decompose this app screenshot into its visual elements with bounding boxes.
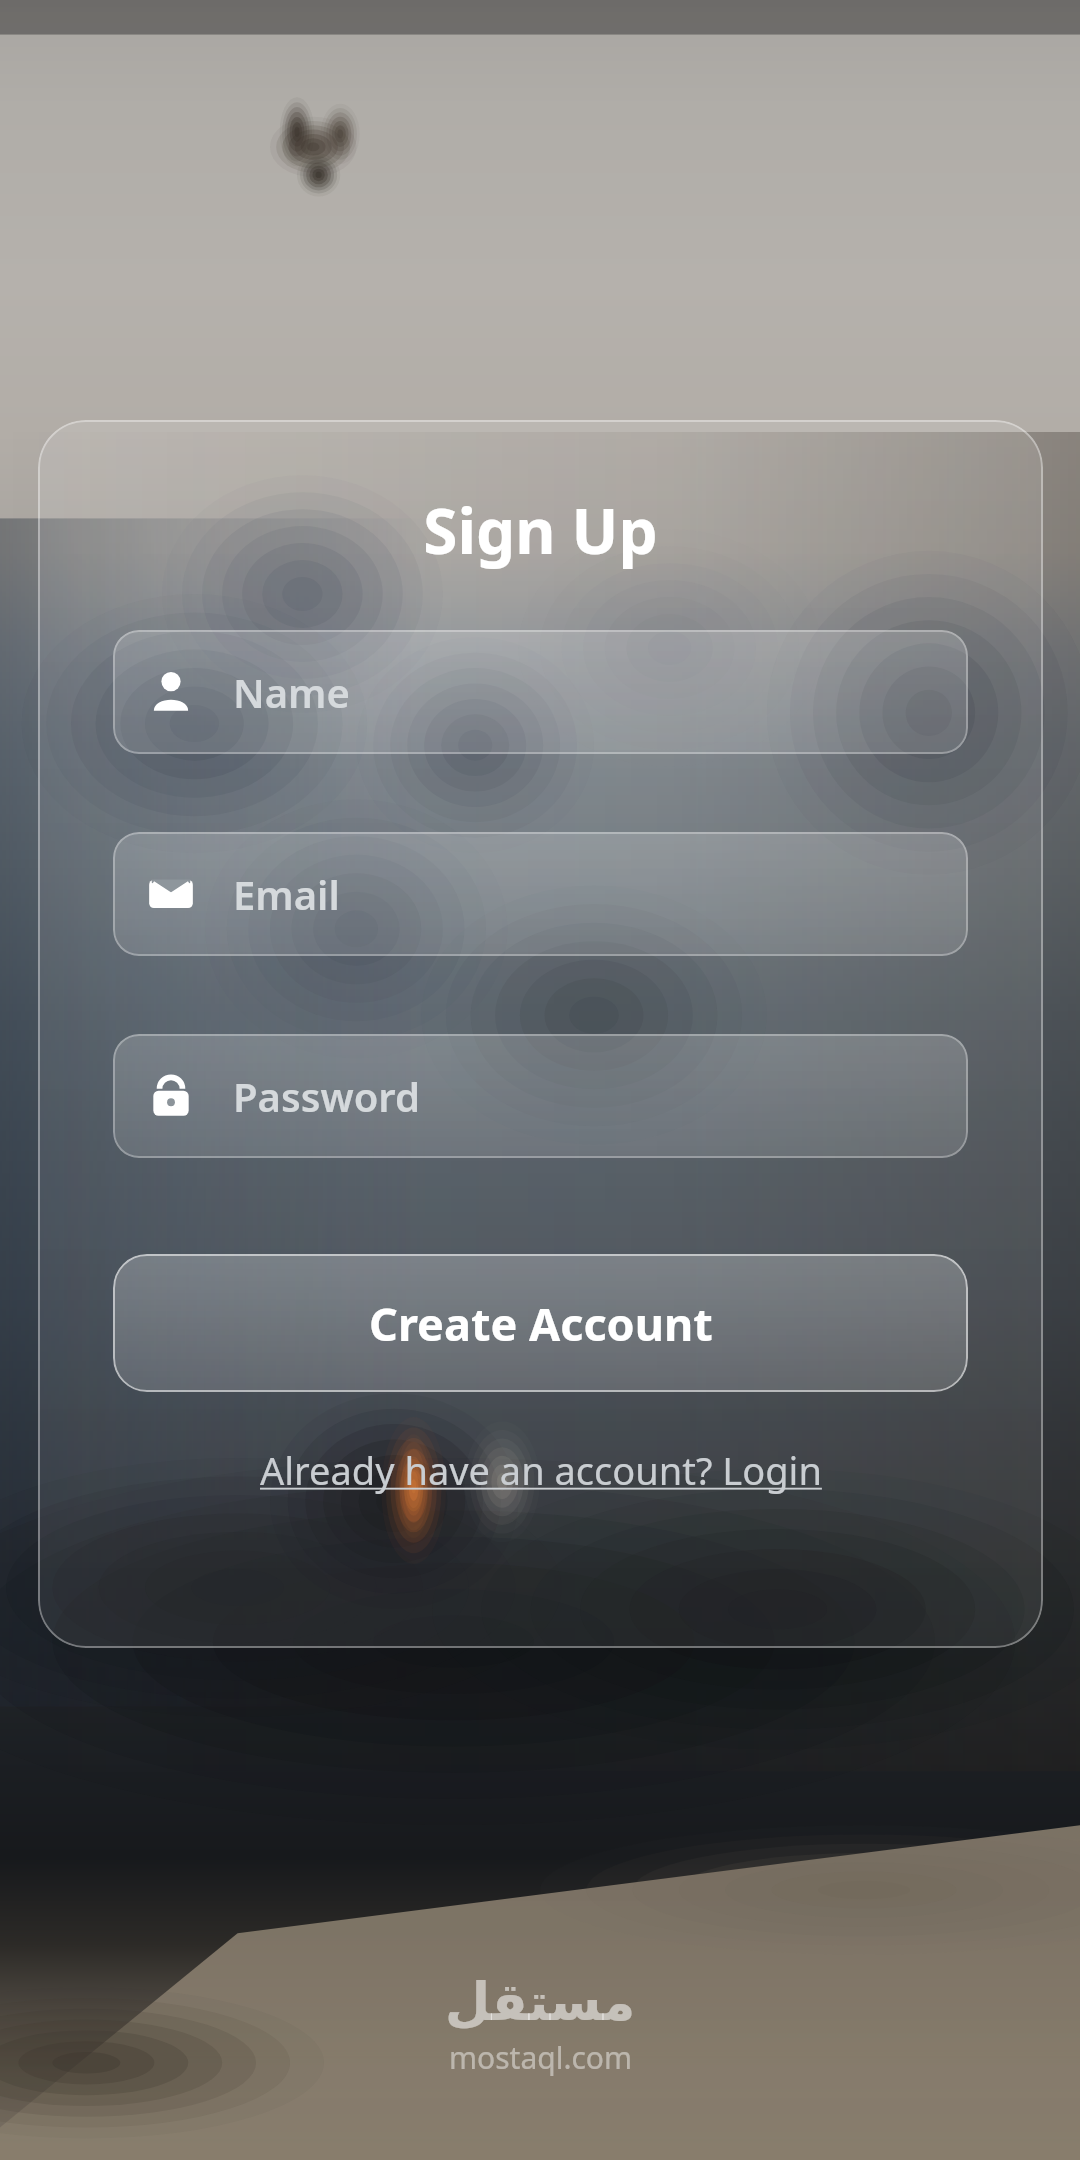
staticText: Password (233, 1069, 420, 1123)
staticText: Sign Up (423, 488, 658, 572)
button[interactable]: Name (113, 630, 968, 754)
button[interactable]: Already have an account? Login (240, 1434, 842, 1506)
staticText: Email (233, 867, 340, 921)
staticText: Create Account (369, 1293, 713, 1354)
staticText: Name (233, 665, 350, 719)
staticText: Already have an account? Login (260, 1444, 822, 1496)
button[interactable]: Password (113, 1034, 968, 1158)
staticText: mostaql.com (449, 2037, 633, 2078)
staticText: مستقل (445, 1972, 636, 2033)
button[interactable]: Create Account (113, 1254, 968, 1392)
button[interactable]: Email (113, 832, 968, 956)
